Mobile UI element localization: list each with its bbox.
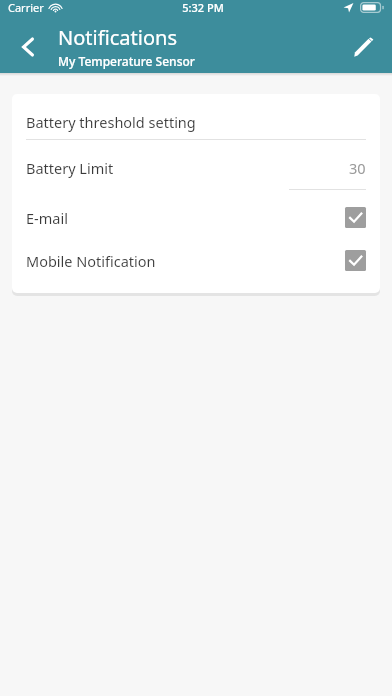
staticText: Notifications	[58, 24, 177, 51]
staticText: Mobile Notification	[26, 251, 156, 271]
staticText: 30	[349, 158, 366, 178]
staticText: My Temperature Sensor	[58, 53, 195, 69]
button[interactable]: Battery Limit	[12, 140, 380, 190]
button[interactable]: Back	[8, 27, 48, 67]
button[interactable]: Edit	[342, 26, 384, 68]
staticText: E-mail	[26, 208, 68, 228]
staticText: Battery Limit	[26, 158, 114, 178]
button[interactable]: E-mail	[12, 207, 380, 228]
staticText: Carrier	[8, 0, 44, 15]
button[interactable]: Mobile Notification	[12, 250, 380, 271]
staticText: Battery threshold setting	[26, 112, 196, 132]
staticText: 5:32 PM	[182, 0, 224, 15]
